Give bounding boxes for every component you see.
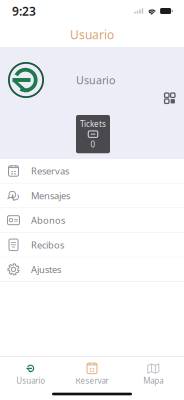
- staticText: Ajustes: [31, 263, 61, 276]
- button[interactable]: Tickets: [76, 115, 110, 153]
- button[interactable]: Mensajes: [0, 184, 184, 208]
- staticText: Usuario: [16, 375, 45, 386]
- button[interactable]: Reservar: [61, 357, 123, 388]
- button[interactable]: Código QR: [161, 90, 178, 106]
- staticText: Reservar: [75, 375, 108, 386]
- staticText: Usuario: [76, 73, 115, 87]
- button[interactable]: Abonos: [0, 208, 184, 233]
- button[interactable]: Reservas: [0, 159, 184, 184]
- staticText: 0: [90, 139, 95, 150]
- button[interactable]: Ajustes: [0, 257, 184, 282]
- button[interactable]: Mapa: [123, 357, 184, 388]
- staticText: Abonos: [31, 214, 65, 226]
- button[interactable]: Recibos: [0, 233, 184, 257]
- staticText: Mensajes: [31, 189, 70, 202]
- staticText: Tickets: [80, 118, 106, 129]
- staticText: 9:23: [12, 3, 36, 19]
- staticText: Recibos: [31, 239, 64, 251]
- staticText: Reservas: [31, 165, 69, 177]
- button[interactable]: Usuario: [0, 357, 61, 388]
- staticText: Usuario: [70, 26, 114, 42]
- staticText: Mapa: [143, 375, 163, 386]
